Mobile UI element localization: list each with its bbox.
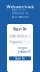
staticText: Sign In (15, 57, 25, 60)
staticText: Sign In (13, 26, 27, 31)
staticText: Sign in to continue to your account (11, 8, 28, 19)
staticText: Welcome back (6, 4, 33, 9)
button[interactable]: Forgot password? (18, 46, 31, 53)
staticText: Forgot password? (18, 46, 31, 53)
staticText: Password (10, 40, 22, 44)
staticText: Email address (10, 34, 27, 38)
button[interactable]: Sign In (9, 56, 31, 60)
